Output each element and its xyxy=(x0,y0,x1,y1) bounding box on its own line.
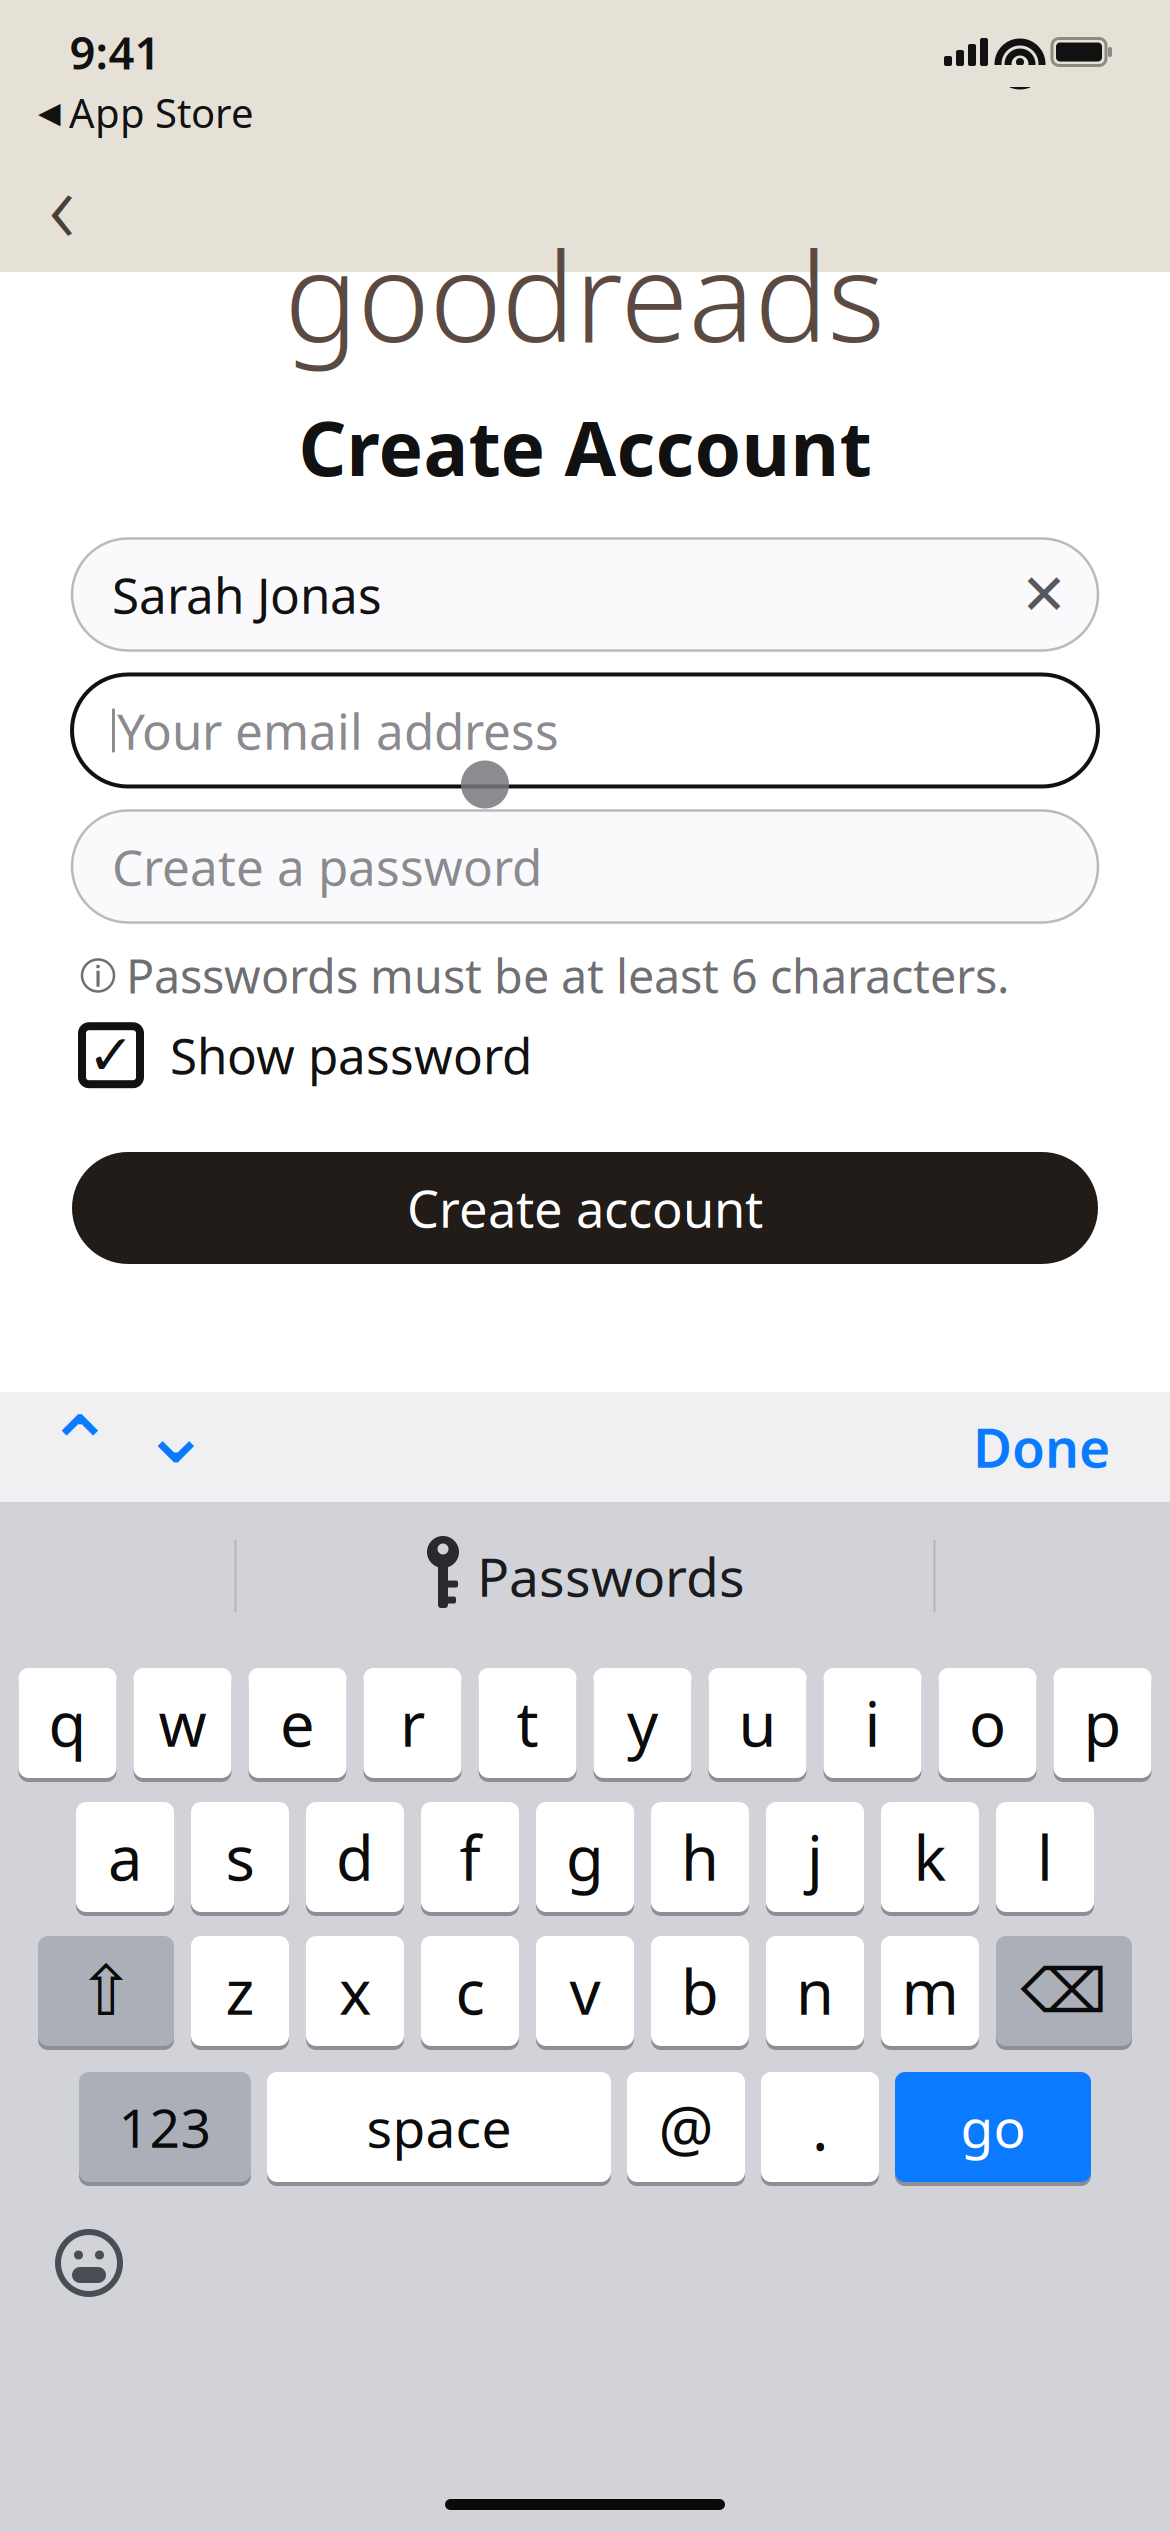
staticText: Passwords xyxy=(477,1541,745,1611)
button[interactable]: Previous field xyxy=(32,1401,128,1493)
staticText: Show password xyxy=(170,1022,532,1088)
staticText: Create account xyxy=(407,1174,763,1242)
staticText: i xyxy=(864,1682,880,1764)
button[interactable]: Passwords xyxy=(385,1526,785,1626)
staticText: h xyxy=(681,1816,719,1898)
staticText: ✕ xyxy=(1020,563,1067,626)
button[interactable]: u xyxy=(708,1664,806,1782)
button[interactable]: ◀ xyxy=(0,82,254,143)
staticText: m xyxy=(901,1950,958,2032)
staticText: n xyxy=(796,1950,834,2032)
button[interactable]: Emoji xyxy=(34,2208,144,2318)
staticText: Passwords must be at least 6 characters. xyxy=(126,944,1010,1006)
staticText: 9:41 xyxy=(69,22,160,82)
staticText: q xyxy=(48,1682,86,1764)
staticText: ⌫ xyxy=(1020,1956,1107,2026)
staticText: Create a password xyxy=(112,834,542,899)
button[interactable]: q xyxy=(18,1664,116,1782)
staticText: a xyxy=(108,1816,142,1898)
button[interactable]: Go xyxy=(895,2068,1091,2186)
button[interactable]: a xyxy=(76,1798,174,1916)
button[interactable]: Done xyxy=(945,1401,1138,1493)
staticText: Your email address xyxy=(117,698,559,763)
staticText: o xyxy=(969,1682,1006,1764)
button[interactable]: h xyxy=(651,1798,749,1916)
staticText: u xyxy=(738,1682,776,1764)
staticText: c xyxy=(455,1950,484,2032)
button[interactable]: i xyxy=(823,1664,921,1782)
staticText: Done xyxy=(973,1412,1110,1482)
button[interactable]: t xyxy=(478,1664,576,1782)
button[interactable]: c xyxy=(421,1932,519,2050)
staticText: i xyxy=(94,956,102,995)
button[interactable]: g xyxy=(536,1798,634,1916)
staticText: d xyxy=(336,1816,374,1898)
button[interactable]: b xyxy=(651,1932,749,2050)
button[interactable]: k xyxy=(881,1798,979,1916)
button[interactable]: Delete xyxy=(996,1932,1132,2050)
button[interactable]: Numbers xyxy=(79,2068,251,2186)
button[interactable]: Back xyxy=(14,162,110,262)
staticText: z xyxy=(225,1950,254,2032)
staticText: goodreads xyxy=(284,213,885,376)
button[interactable]: y xyxy=(593,1664,691,1782)
staticText: e xyxy=(280,1682,315,1764)
staticText: w xyxy=(158,1682,206,1764)
staticText: k xyxy=(913,1816,946,1898)
staticText: l xyxy=(1037,1816,1053,1898)
button[interactable]: p xyxy=(1053,1664,1151,1782)
staticText: x xyxy=(339,1950,371,2032)
staticText: b xyxy=(681,1950,719,2032)
button[interactable]: s xyxy=(191,1798,289,1916)
staticText: ⌃ xyxy=(44,1399,116,1495)
button[interactable]: Create account xyxy=(72,1152,1098,1264)
staticText: y xyxy=(627,1682,658,1764)
button[interactable]: o xyxy=(938,1664,1036,1782)
button[interactable]: d xyxy=(306,1798,404,1916)
staticText: ✓ xyxy=(87,1023,134,1087)
staticText: ‹ xyxy=(48,137,75,271)
button[interactable]: w xyxy=(133,1664,231,1782)
button[interactable]: Clear text xyxy=(1012,562,1076,626)
staticText: App Store xyxy=(69,86,254,139)
staticText: r xyxy=(400,1682,425,1764)
staticText: v xyxy=(569,1950,600,2032)
button[interactable]: m xyxy=(881,1932,979,2050)
staticText: p xyxy=(1083,1682,1121,1764)
staticText: ⌄ xyxy=(140,1385,212,1481)
button[interactable]: n xyxy=(766,1932,864,2050)
staticText: t xyxy=(516,1682,538,1764)
button[interactable]: l xyxy=(996,1798,1094,1916)
button[interactable]: Next field xyxy=(128,1401,224,1493)
button[interactable]: x xyxy=(306,1932,404,2050)
staticText: ⇧ xyxy=(77,1952,135,2030)
button[interactable]: v xyxy=(536,1932,634,2050)
button[interactable]: @ xyxy=(627,2068,745,2186)
staticText: go xyxy=(960,2092,1025,2162)
staticText: s xyxy=(225,1816,254,1898)
staticText: Create Account xyxy=(298,397,871,496)
staticText: j xyxy=(807,1816,823,1898)
button[interactable]: j xyxy=(766,1798,864,1916)
button[interactable]: Shift xyxy=(38,1932,174,2050)
button[interactable]: ✓ xyxy=(72,1006,1098,1104)
staticText: . xyxy=(812,2086,828,2168)
button[interactable]: Space xyxy=(267,2068,611,2186)
staticText: 123 xyxy=(118,2092,211,2162)
button[interactable]: z xyxy=(191,1932,289,2050)
staticText: space xyxy=(366,2092,511,2162)
button[interactable]: e xyxy=(248,1664,346,1782)
staticText: f xyxy=(459,1816,480,1898)
staticText: ◀ xyxy=(38,96,61,129)
staticText: g xyxy=(566,1816,604,1898)
button[interactable]: r xyxy=(363,1664,461,1782)
button[interactable]: f xyxy=(421,1798,519,1916)
staticText: @ xyxy=(658,2086,713,2168)
button[interactable]: Period xyxy=(761,2068,879,2186)
staticText: Sarah Jonas xyxy=(112,562,382,627)
